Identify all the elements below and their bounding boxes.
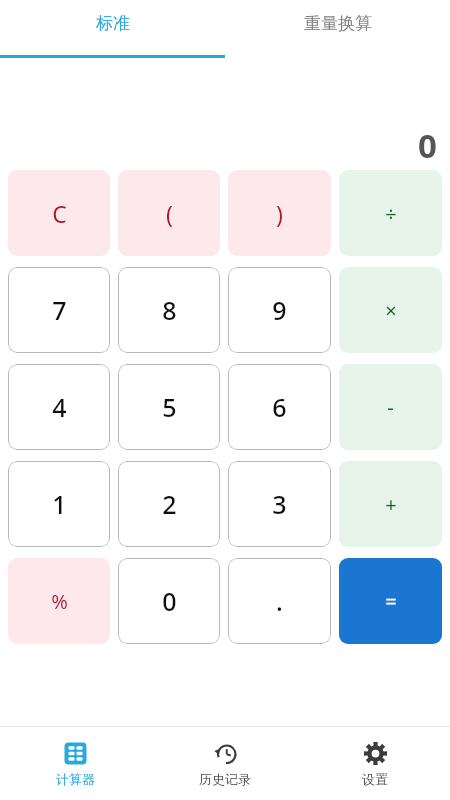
button[interactable]: ) [228,170,331,256]
button[interactable]: 历史记录 [150,727,300,800]
button[interactable]: 3 [228,461,331,547]
button[interactable]: C [8,170,110,256]
staticText: 0 [418,123,437,168]
staticText: 9 [272,293,287,327]
button[interactable]: + [339,461,442,547]
staticText: 1 [52,487,67,521]
staticText: 6 [272,390,287,424]
staticText: = [385,588,397,615]
button[interactable]: 2 [118,461,220,547]
staticText: + [385,491,397,518]
button[interactable]: 7 [8,267,110,353]
button[interactable]: = [339,558,442,644]
button[interactable]: 标准 [0,0,225,59]
button[interactable]: . [228,558,331,644]
staticText: 历史记录 [199,771,251,787]
staticText: C [52,198,67,229]
staticText: 重量换算 [304,13,372,34]
button[interactable]: 计算器 [0,727,150,800]
button[interactable]: ( [118,170,220,256]
button[interactable]: 5 [118,364,220,450]
staticText: ÷ [385,200,397,227]
staticText: % [51,588,68,615]
staticText: 0 [162,584,177,618]
staticText: × [385,297,397,324]
staticText: 8 [162,293,177,327]
button[interactable]: × [339,267,442,353]
button[interactable]: 重量换算 [225,0,450,59]
staticText: ) [276,198,283,229]
button[interactable]: ÷ [339,170,442,256]
staticText: 4 [52,390,67,424]
button[interactable]: 8 [118,267,220,353]
button[interactable]: 1 [8,461,110,547]
button[interactable]: 9 [228,267,331,353]
staticText: 计算器 [56,771,95,787]
staticText: 标准 [96,13,130,34]
staticText: - [387,394,394,421]
staticText: ( [166,198,173,229]
staticText: 3 [272,487,287,521]
button[interactable]: - [339,364,442,450]
staticText: 5 [162,390,177,424]
staticText: . [276,584,283,618]
staticText: 2 [162,487,177,521]
button[interactable]: 设置 [300,727,450,800]
button[interactable]: 0 [118,558,220,644]
staticText: 设置 [362,771,388,787]
button[interactable]: % [8,558,110,644]
button[interactable]: 4 [8,364,110,450]
staticText: 7 [52,293,67,327]
button[interactable]: 6 [228,364,331,450]
